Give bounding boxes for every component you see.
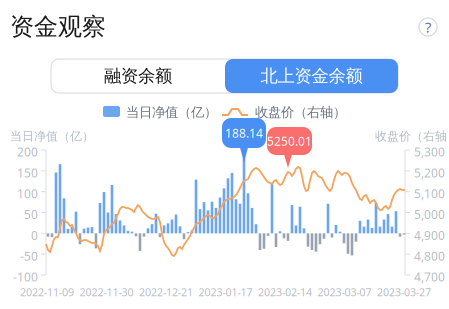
staticText: 50 — [24, 206, 38, 222]
staticText: 2022-11-30 — [79, 285, 133, 299]
staticText: 5,100 — [414, 186, 445, 202]
staticText: 2022-12-21 — [139, 285, 193, 299]
staticText: 5,000 — [414, 206, 445, 222]
staticText: 5,200 — [414, 165, 445, 181]
staticText: 当日净值（亿） — [126, 104, 217, 120]
staticText: -50 — [20, 248, 38, 264]
button[interactable]: 北上资金余额 — [225, 59, 398, 93]
staticText: 4,900 — [414, 227, 445, 243]
staticText: 4,700 — [414, 269, 445, 285]
button[interactable]: Help — [415, 14, 441, 40]
staticText: 融资余额 — [104, 65, 172, 87]
staticText: 收盘价（右轴） — [255, 104, 346, 120]
staticText: 100 — [17, 186, 38, 202]
staticText: 4,800 — [414, 248, 445, 264]
staticText: 2023-03-27 — [377, 285, 431, 299]
staticText: 2023-01-17 — [198, 285, 252, 299]
staticText: 0 — [31, 227, 38, 243]
staticText: -100 — [13, 269, 38, 285]
staticText: 188.14 — [225, 125, 263, 141]
staticText: 200 — [17, 144, 38, 160]
staticText: 资金观察 — [10, 12, 106, 41]
staticText: 当日净值（亿） — [10, 129, 94, 144]
staticText: 北上资金余额 — [260, 65, 362, 87]
button[interactable]: 融资余额 — [51, 59, 225, 93]
staticText: ? — [425, 17, 431, 37]
staticText: 2023-03-07 — [317, 285, 371, 299]
staticText: 150 — [17, 165, 38, 181]
staticText: 5250.01 — [267, 133, 312, 149]
staticText: 2023-02-14 — [258, 285, 312, 299]
staticText: 2022-11-09 — [20, 285, 74, 299]
staticText: 收盘价（右轴） — [375, 129, 449, 144]
staticText: 5,300 — [414, 144, 445, 160]
